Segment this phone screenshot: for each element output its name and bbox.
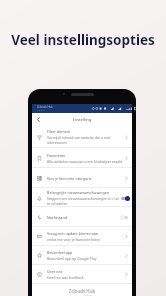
button[interactable]: Vraag een update binnen aan xyxy=(32,227,132,246)
staticText: Vermijdt inhoud van website die u niet i… xyxy=(47,135,123,145)
staticText: Geef me wat feedback xyxy=(47,275,84,280)
staticText: Zclouds Hub xyxy=(32,288,132,294)
button[interactable]: Kies je favoriete categorie xyxy=(32,168,132,188)
button[interactable]: Over ons xyxy=(32,265,132,284)
staticText: verlat me voor je favoriete krant xyxy=(47,237,100,242)
staticText: Vraag een update binnen aan xyxy=(47,231,99,236)
staticText: Zclouds Hub xyxy=(37,105,53,109)
button[interactable]: Toggle xyxy=(120,196,129,201)
staticText: Stappen om nieuwswaarschuwingen in / uit… xyxy=(47,196,119,206)
button[interactable]: Filter domein xyxy=(32,126,132,148)
staticText: Filter domein xyxy=(47,129,70,134)
button[interactable]: Nachtstand xyxy=(32,207,132,227)
button[interactable]: Beoordeel app xyxy=(32,246,132,265)
staticText: Beoordeel app xyxy=(47,250,73,255)
staticText: Kies je favoriete categorie xyxy=(47,176,92,181)
staticText: Veel instellingsopties xyxy=(0,31,166,49)
staticText: Beoordeel app op Google Play xyxy=(47,256,97,261)
button[interactable]: Back xyxy=(34,115,43,124)
staticText: Instelling xyxy=(73,117,92,123)
button[interactable]: Belangrijke nieuwswaarschuwingen xyxy=(32,188,132,207)
staticText: version 1.1.0 xyxy=(32,295,132,296)
staticText: Over ons xyxy=(47,269,63,274)
staticText: Alle artikelen waarvan u een bladwijzer … xyxy=(47,159,123,164)
staticText: Favorieten xyxy=(47,153,66,158)
button[interactable]: Favorieten xyxy=(32,148,132,168)
staticText: Nieuws xyxy=(37,109,45,112)
staticText: Nachtstand xyxy=(47,215,67,220)
staticText: Belangrijke nieuwswaarschuwingen xyxy=(47,190,110,195)
button[interactable]: Toggle xyxy=(120,215,129,220)
